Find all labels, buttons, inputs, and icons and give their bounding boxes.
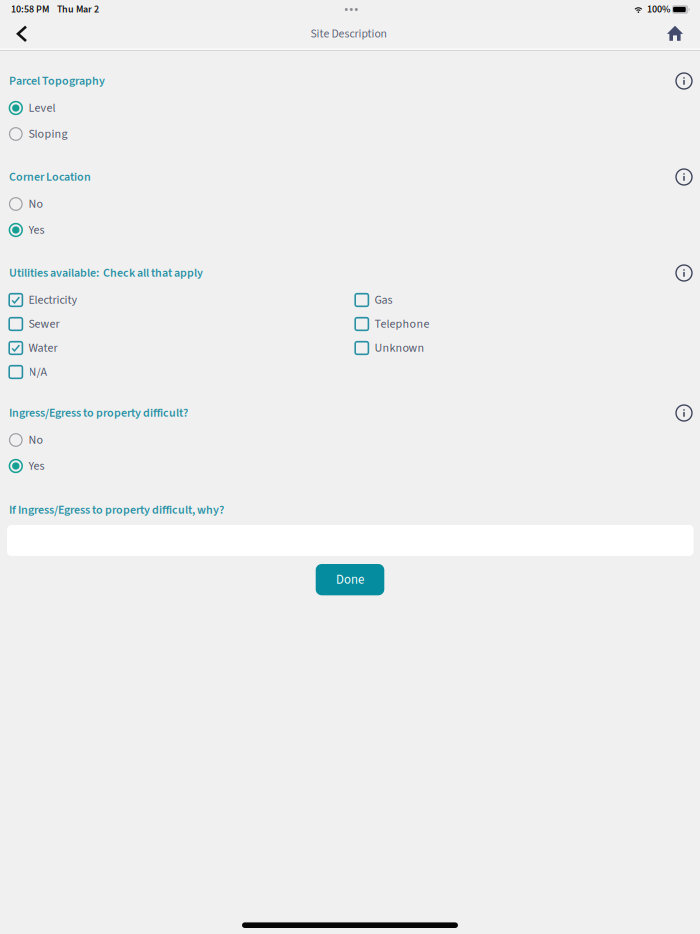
staticText: Done (336, 570, 364, 589)
button[interactable]: More information (669, 262, 699, 284)
button[interactable]: Level (0, 95, 700, 121)
staticText: Site Description (310, 25, 386, 42)
button[interactable]: Done (316, 564, 384, 595)
staticText: If Ingress/Egress to property difficult,… (9, 501, 224, 519)
button[interactable]: No (0, 191, 700, 217)
staticText: Gas (375, 291, 393, 309)
staticText: Sewer (29, 315, 60, 333)
button[interactable]: Yes (0, 453, 700, 479)
staticText: Ingress/Egress to property difficult? (9, 404, 188, 422)
staticText: Telephone (375, 315, 430, 333)
staticText: Water (29, 339, 58, 357)
staticText: 100% (647, 2, 670, 17)
staticText: Thu Mar 2 (57, 2, 99, 17)
button[interactable]: No (0, 427, 700, 453)
button[interactable]: More information (669, 70, 699, 92)
button[interactable]: Sloping (0, 121, 700, 147)
button[interactable]: Telephone (355, 312, 527, 336)
staticText: Unknown (375, 339, 425, 357)
button[interactable]: Water (9, 336, 355, 360)
staticText: N/A (29, 363, 48, 381)
staticText: Electricity (29, 291, 78, 309)
staticText: Yes (29, 221, 45, 239)
button[interactable]: More information (669, 166, 699, 188)
staticText: No (29, 431, 44, 449)
button[interactable]: Electricity (9, 288, 355, 312)
button[interactable]: Home (654, 20, 696, 50)
button[interactable]: N/A (9, 360, 355, 384)
button[interactable]: Back (1, 20, 43, 50)
button[interactable]: Unknown (355, 336, 527, 360)
button[interactable]: More information (669, 402, 699, 424)
button[interactable]: Gas (355, 288, 527, 312)
button[interactable]: Sewer (9, 312, 355, 336)
staticText: Sloping (29, 125, 68, 143)
staticText: Corner Location (9, 168, 91, 186)
staticText: 10:58 PM (11, 2, 49, 17)
staticText: Parcel Topography (9, 72, 105, 90)
button[interactable]: Yes (0, 217, 700, 243)
staticText: Level (29, 99, 56, 117)
staticText: Yes (29, 457, 45, 475)
staticText: No (29, 195, 44, 213)
staticText: Utilities available: Check all that appl… (9, 264, 203, 282)
